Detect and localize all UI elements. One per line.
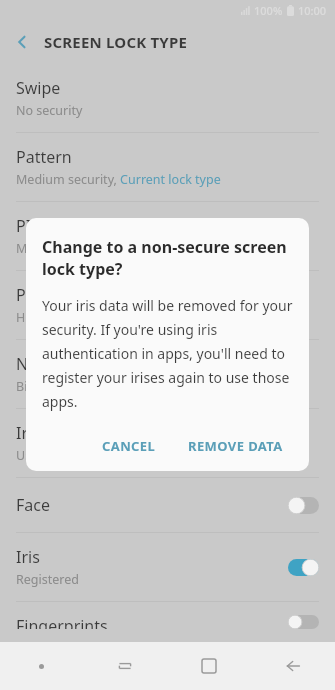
staticText: PIN [16,215,44,237]
staticText: Fingerprints [16,615,108,629]
button[interactable]: Swipe [0,64,335,132]
staticText: CANCEL [102,437,156,455]
staticText: Medium security, Current lock type [16,171,221,188]
staticText: Iris [16,546,40,568]
staticText: Pattern [16,146,72,168]
button[interactable]: Recents [83,642,167,690]
button[interactable]: Password [0,271,335,339]
staticText: Swipe [16,77,61,99]
staticText: Iris lock [16,422,75,444]
staticText: SCREEN LOCK TYPE [44,32,188,52]
button[interactable]: REMOVE DATA [178,429,293,463]
button[interactable]: CANCEL [92,429,166,463]
staticText: 10:00 [298,3,327,18]
button[interactable]: Menu dot [0,642,83,690]
staticText: 100% [254,3,283,18]
button[interactable]: Face [0,478,335,532]
button[interactable]: Iris [0,533,335,601]
button[interactable]: Face toggle [275,491,319,519]
staticText: Biometrics [16,378,79,395]
staticText: Registered [16,571,79,588]
staticText: Change to a non-secure screen lock type? [42,236,293,280]
button[interactable]: Back [251,642,335,690]
staticText: Face [16,494,50,516]
staticText: High security [16,309,94,326]
button[interactable]: PIN [0,202,335,270]
staticText: Used for unlocking [16,447,127,464]
button[interactable]: Iris lock [0,409,335,477]
staticText: REMOVE DATA [188,437,283,455]
button[interactable]: Home [167,642,251,690]
button[interactable]: None [0,340,335,408]
staticText: Your iris data will be removed for your … [42,296,293,411]
staticText: None [16,353,57,375]
staticText: No security [16,102,83,119]
button[interactable]: Back [0,20,44,64]
button[interactable]: Iris toggle [275,553,319,581]
staticText: Password [16,284,89,306]
button[interactable]: Fingerprints toggle [275,615,319,629]
button[interactable]: Pattern [0,133,335,201]
button[interactable]: Fingerprints [0,602,335,642]
staticText: Medium to high security [16,240,159,257]
